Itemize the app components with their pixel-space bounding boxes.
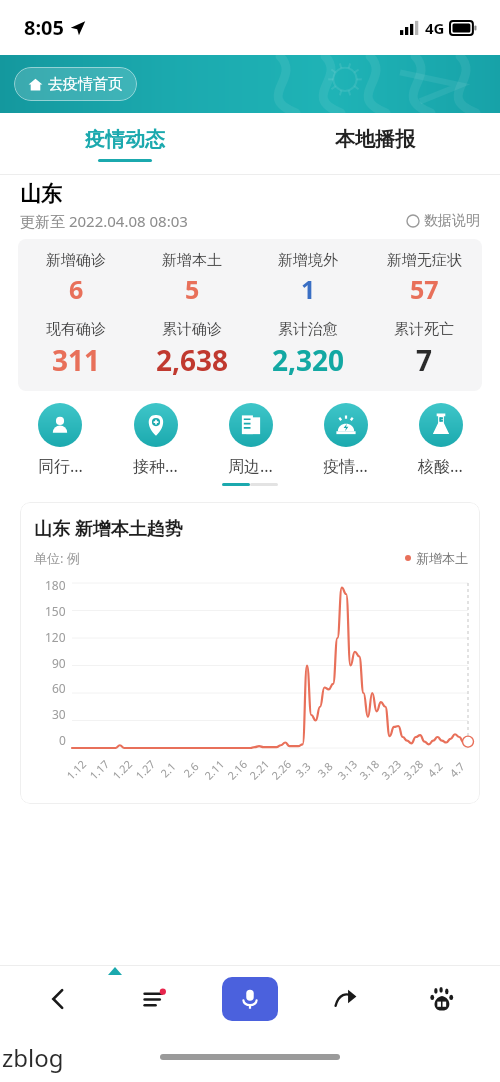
- staticText: 累计死亡: [394, 320, 454, 339]
- button[interactable]: Voice search: [222, 977, 278, 1021]
- staticText: 2,320: [272, 341, 345, 379]
- staticText: 周边...: [228, 455, 273, 477]
- staticText: 核酸...: [418, 455, 463, 477]
- staticText: 4G: [425, 18, 445, 38]
- staticText: 山东 新增本土趋势: [34, 516, 183, 541]
- staticText: 2.1: [157, 758, 179, 780]
- button[interactable]: 数据说明: [406, 212, 480, 230]
- button[interactable]: 累计治愈: [250, 320, 366, 379]
- staticText: 累计确诊: [162, 320, 222, 339]
- button[interactable]: 现有确诊: [18, 320, 134, 379]
- staticText: 30: [52, 706, 66, 722]
- staticText: 新增本土: [162, 251, 222, 270]
- staticText: 3.8: [314, 758, 336, 780]
- staticText: 2.11: [201, 756, 227, 783]
- staticText: 3.3: [292, 758, 314, 780]
- staticText: 2.21: [246, 756, 272, 783]
- staticText: 8:05: [24, 14, 64, 41]
- staticText: 311: [52, 341, 101, 379]
- staticText: 疫情...: [323, 455, 368, 477]
- staticText: 同行...: [38, 455, 83, 477]
- staticText: zblog: [2, 1041, 64, 1074]
- button[interactable]: Back: [10, 966, 106, 1032]
- staticText: 1.12: [63, 756, 89, 783]
- button[interactable]: 新增无症状: [366, 251, 482, 306]
- staticText: 7: [416, 341, 433, 379]
- staticText: 1.22: [109, 756, 135, 783]
- staticText: 新增确诊: [46, 251, 106, 270]
- staticText: 6: [69, 272, 84, 306]
- staticText: 3.28: [400, 756, 426, 783]
- staticText: 现有确诊: [46, 320, 106, 339]
- staticText: 4.7: [446, 758, 468, 780]
- staticText: 3.13: [334, 756, 360, 783]
- staticText: 1.27: [132, 756, 158, 783]
- staticText: 去疫情首页: [48, 75, 123, 94]
- button[interactable]: 周边...: [203, 403, 298, 477]
- staticText: 90: [52, 655, 66, 671]
- staticText: 本地播报: [335, 127, 415, 152]
- staticText: 2,638: [156, 341, 229, 379]
- button[interactable]: 新增确诊: [18, 251, 134, 306]
- button[interactable]: Menu: [106, 966, 202, 1032]
- button[interactable]: 新增本土: [134, 251, 250, 306]
- staticText: 新增境外: [278, 251, 338, 270]
- button[interactable]: 疫情动态: [0, 113, 250, 175]
- staticText: 0: [59, 732, 66, 748]
- staticText: 2.6: [180, 758, 202, 780]
- staticText: 180: [45, 577, 66, 593]
- button[interactable]: 山东 新增本土趋势: [20, 502, 480, 804]
- staticText: 5: [185, 272, 200, 306]
- button[interactable]: 新增境外: [250, 251, 366, 306]
- staticText: 疫情动态: [85, 127, 165, 152]
- staticText: 更新至 2022.04.08 08:03: [20, 211, 188, 231]
- button[interactable]: 疫情...: [298, 403, 393, 477]
- staticText: 2.26: [268, 756, 294, 783]
- staticText: 57: [410, 272, 439, 306]
- button[interactable]: Baidu: [394, 966, 490, 1032]
- staticText: 120: [45, 629, 66, 645]
- button[interactable]: 累计确诊: [134, 320, 250, 379]
- button[interactable]: 同行...: [12, 403, 108, 477]
- staticText: 2.16: [224, 756, 250, 783]
- staticText: 4.2: [424, 758, 446, 780]
- staticText: 1.17: [86, 756, 112, 783]
- staticText: 150: [45, 603, 66, 619]
- staticText: 60: [52, 680, 66, 696]
- button[interactable]: 去疫情首页: [14, 67, 137, 101]
- staticText: 3.23: [378, 756, 404, 783]
- staticText: 单位: 例: [34, 549, 80, 567]
- button[interactable]: 接种...: [108, 403, 203, 477]
- staticText: 累计治愈: [278, 320, 338, 339]
- staticText: 3.18: [356, 756, 382, 783]
- staticText: 数据说明: [424, 212, 480, 230]
- button[interactable]: 本地播报: [250, 113, 500, 175]
- staticText: 新增本土: [416, 550, 468, 566]
- staticText: 接种...: [133, 455, 178, 477]
- staticText: 山东: [20, 181, 62, 207]
- staticText: 1: [301, 272, 316, 306]
- button[interactable]: 核酸...: [393, 403, 488, 477]
- button[interactable]: Share: [298, 966, 394, 1032]
- button[interactable]: 累计死亡: [366, 320, 482, 379]
- staticText: 新增无症状: [387, 251, 462, 270]
